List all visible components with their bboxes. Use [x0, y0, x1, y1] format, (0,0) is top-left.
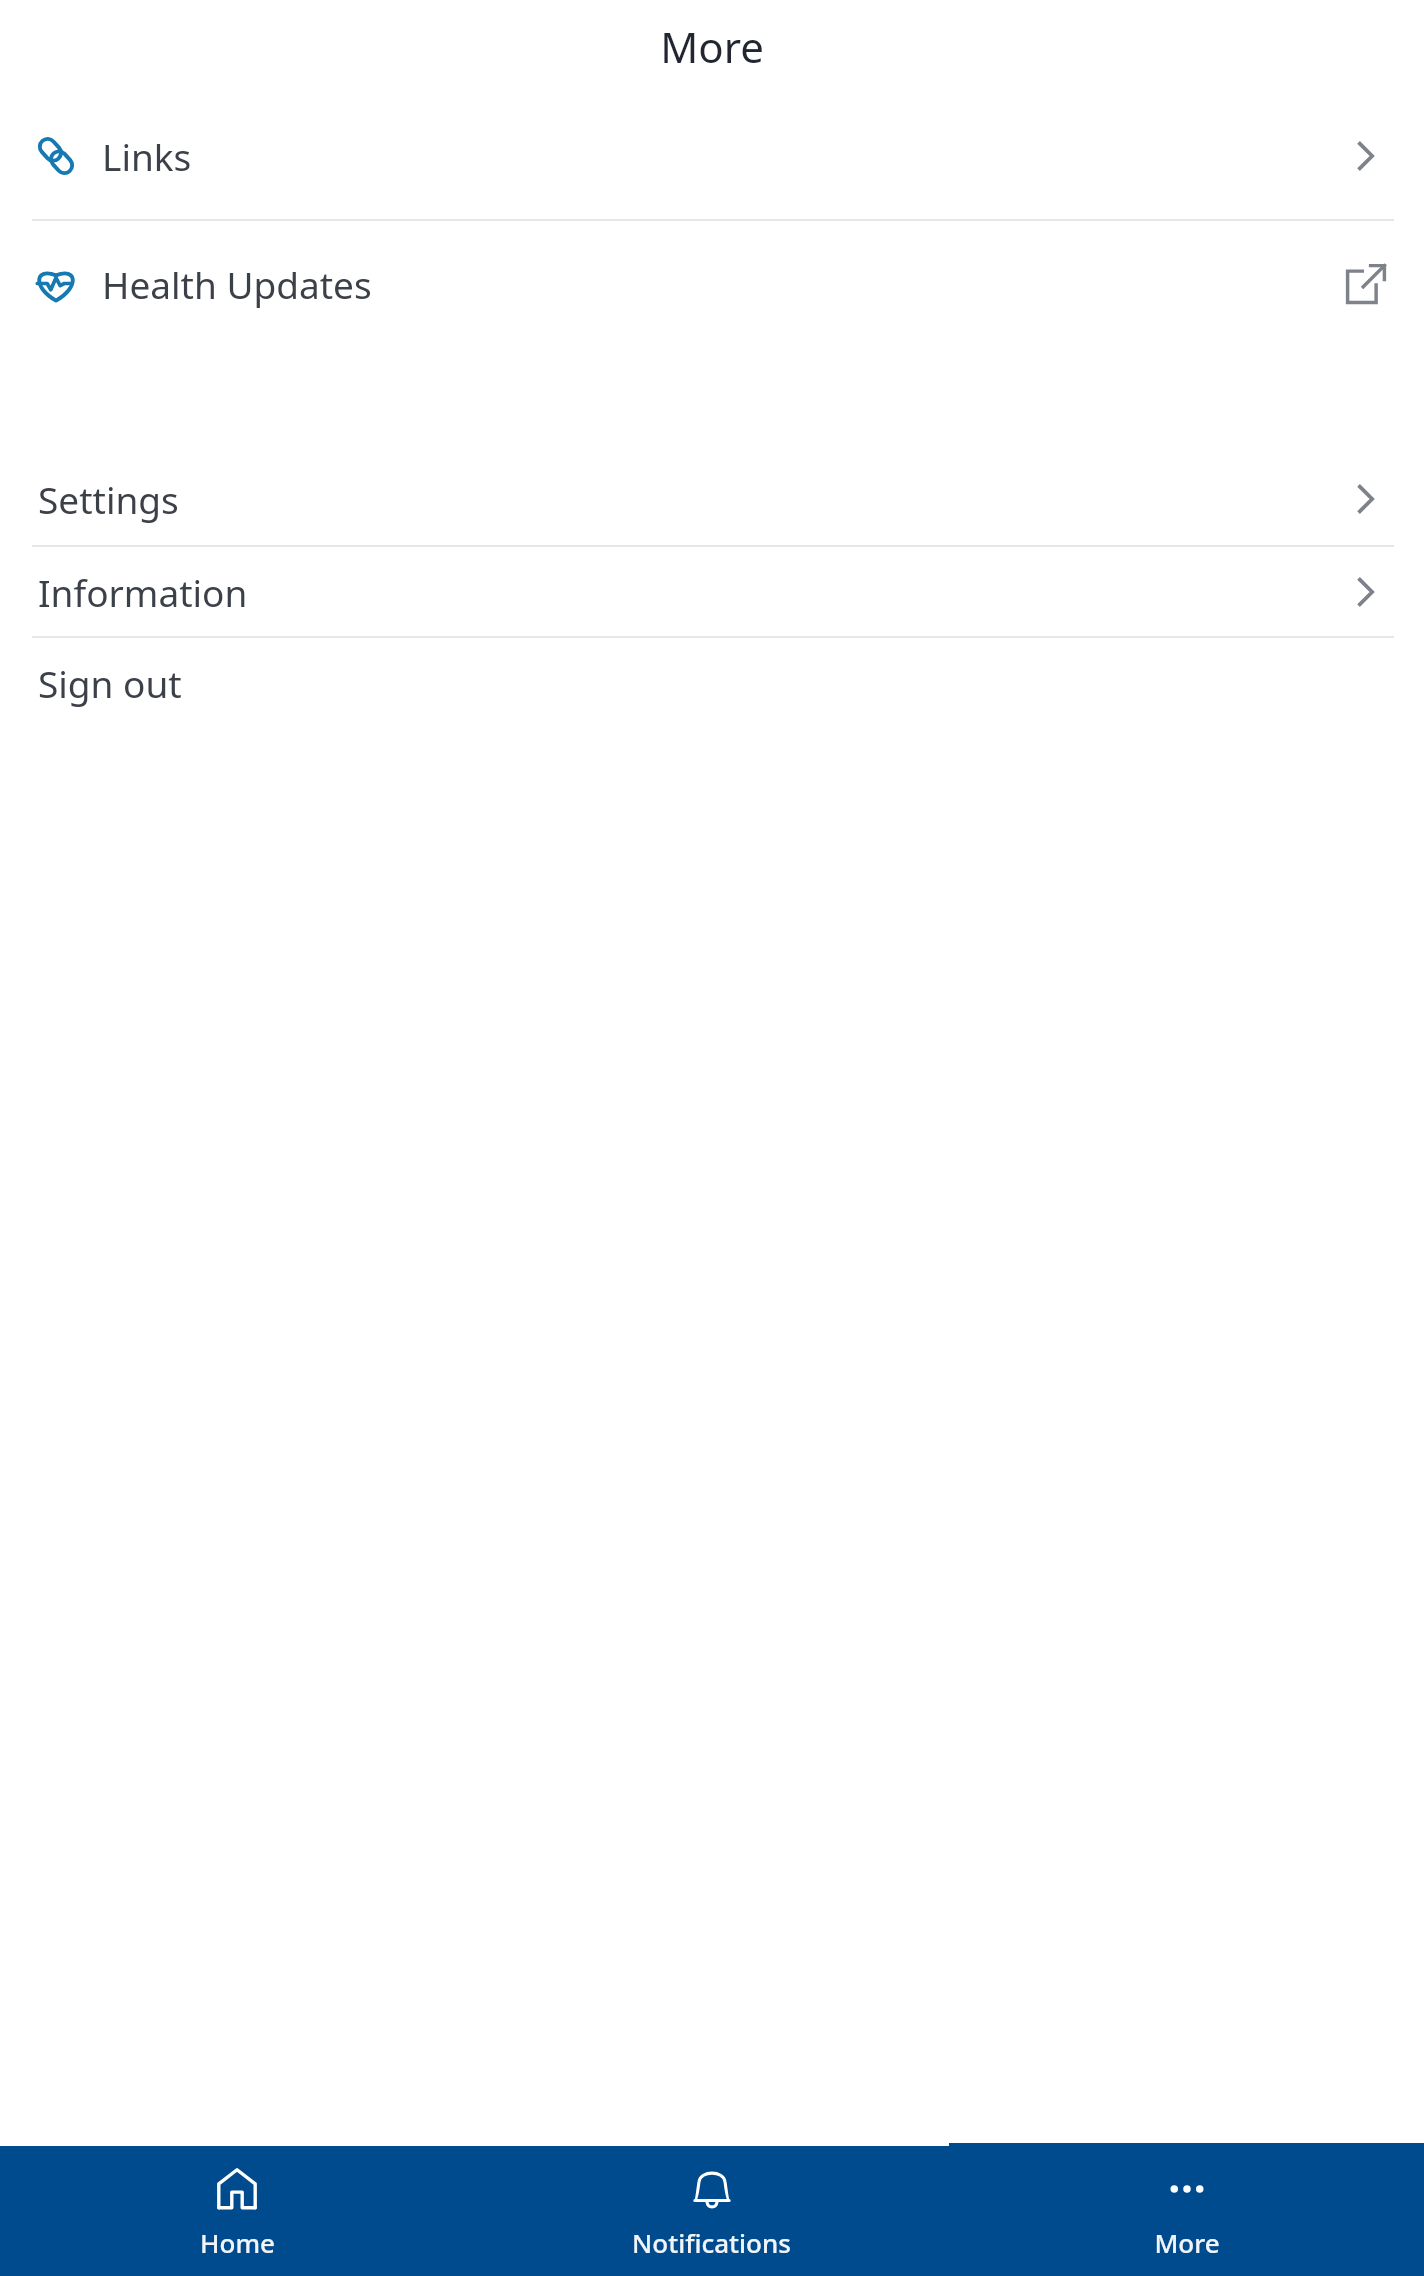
staticText: Health Updates — [102, 259, 372, 309]
staticText: Links — [102, 131, 192, 181]
button[interactable]: Sign out — [0, 638, 1424, 727]
button[interactable]: Settings — [0, 453, 1424, 545]
button[interactable]: Health Updates — [0, 221, 1424, 347]
button[interactable]: Information — [0, 547, 1424, 636]
button[interactable]: Links — [0, 93, 1424, 219]
staticText: More — [1154, 2225, 1220, 2260]
button[interactable]: Home — [0, 2146, 474, 2276]
button[interactable]: Notifications — [474, 2146, 949, 2276]
button[interactable]: More — [949, 2146, 1424, 2276]
staticText: Sign out — [38, 658, 182, 708]
staticText: Settings — [38, 474, 179, 524]
staticText: Information — [38, 567, 248, 617]
staticText: Home — [200, 2225, 275, 2260]
staticText: More — [660, 18, 764, 75]
staticText: Notifications — [632, 2225, 791, 2260]
